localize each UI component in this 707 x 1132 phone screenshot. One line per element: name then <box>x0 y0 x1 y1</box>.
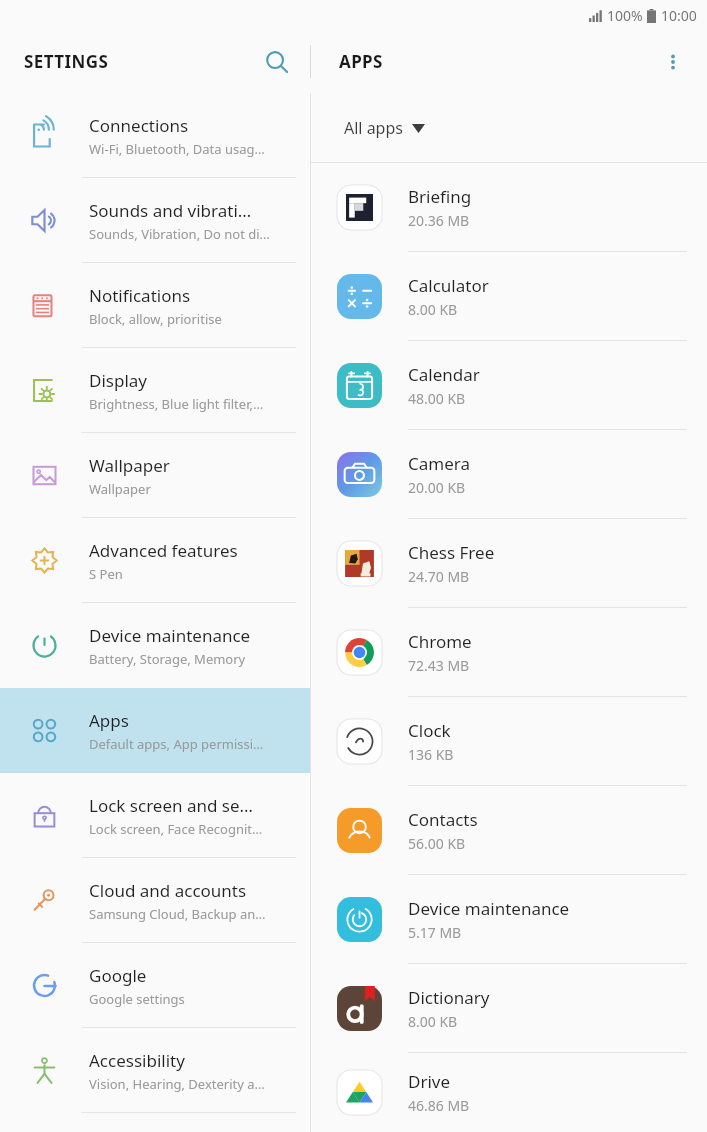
button[interactable]: Sounds and vibrati… <box>0 178 310 263</box>
staticText: Calculator <box>408 274 489 297</box>
staticText: Default apps, App permissi… <box>89 735 264 753</box>
staticText: 48.00 KB <box>408 389 466 408</box>
button[interactable]: Accessibility <box>0 1028 310 1113</box>
staticText: S Pen <box>89 565 123 583</box>
staticText: Chess Free <box>408 541 495 564</box>
button[interactable]: Dictionary <box>311 964 707 1053</box>
button[interactable]: Calculator <box>311 252 707 341</box>
staticText: 72.43 MB <box>408 656 470 675</box>
button[interactable]: Google <box>0 943 310 1028</box>
button[interactable]: Display <box>0 348 310 433</box>
button[interactable]: More options <box>647 36 699 88</box>
button[interactable]: Apps <box>0 688 310 773</box>
staticText: Device maintenance <box>408 897 570 920</box>
staticText: Drive <box>408 1070 451 1093</box>
button[interactable]: Drive <box>311 1053 707 1132</box>
button[interactable]: Search <box>251 36 303 88</box>
staticText: Wi-Fi, Bluetooth, Data usag… <box>89 140 265 158</box>
staticText: Advanced features <box>89 539 238 562</box>
staticText: 8.00 KB <box>408 300 458 319</box>
staticText: Google <box>89 964 147 987</box>
staticText: Display <box>89 369 147 392</box>
staticText: 24.70 MB <box>408 567 470 586</box>
staticText: 10:00 <box>661 6 697 25</box>
staticText: Camera <box>408 452 470 475</box>
button[interactable]: Camera <box>311 430 707 519</box>
button[interactable]: Wallpaper <box>0 433 310 518</box>
staticText: Block, allow, prioritise <box>89 310 222 328</box>
button[interactable]: Chrome <box>311 608 707 697</box>
button[interactable]: Connections <box>0 93 310 178</box>
staticText: 20.00 KB <box>408 478 466 497</box>
staticText: SETTINGS <box>24 50 251 73</box>
staticText: 46.86 MB <box>408 1096 470 1115</box>
staticText: 5.17 MB <box>408 923 462 942</box>
staticText: All apps <box>344 117 403 139</box>
staticText: Sounds, Vibration, Do not di… <box>89 225 270 243</box>
staticText: Sounds and vibrati… <box>89 199 252 222</box>
button[interactable]: Contacts <box>311 786 707 875</box>
button[interactable]: All apps <box>341 113 428 143</box>
staticText: Brightness, Blue light filter,… <box>89 395 264 413</box>
button[interactable]: Clock <box>311 697 707 786</box>
staticText: Battery, Storage, Memory <box>89 650 246 668</box>
staticText: Contacts <box>408 808 478 831</box>
staticText: APPS <box>339 50 647 73</box>
button[interactable]: Calendar <box>311 341 707 430</box>
staticText: Clock <box>408 719 451 742</box>
staticText: 20.36 MB <box>408 211 470 230</box>
staticText: Vision, Hearing, Dexterity a… <box>89 1075 265 1093</box>
staticText: Chrome <box>408 630 472 653</box>
staticText: 8.00 KB <box>408 1012 458 1031</box>
staticText: Lock screen and se… <box>89 794 254 817</box>
staticText: Lock screen, Face Recognit… <box>89 820 263 838</box>
staticText: Briefing <box>408 185 472 208</box>
staticText: Calendar <box>408 363 480 386</box>
staticText: Dictionary <box>408 986 490 1009</box>
staticText: Accessibility <box>89 1049 185 1072</box>
button[interactable]: Briefing <box>311 163 707 252</box>
staticText: Notifications <box>89 284 191 307</box>
staticText: Device maintenance <box>89 624 251 647</box>
staticText: Apps <box>89 709 129 732</box>
staticText: 56.00 KB <box>408 834 466 853</box>
staticText: Google settings <box>89 990 185 1008</box>
button[interactable]: Advanced features <box>0 518 310 603</box>
staticText: Samsung Cloud, Backup an… <box>89 905 266 923</box>
button[interactable]: Cloud and accounts <box>0 858 310 943</box>
button[interactable]: Notifications <box>0 263 310 348</box>
button[interactable]: Lock screen and se… <box>0 773 310 858</box>
staticText: Connections <box>89 114 189 137</box>
staticText: 136 KB <box>408 745 454 764</box>
staticText: 100% <box>607 6 643 25</box>
staticText: Wallpaper <box>89 480 151 498</box>
button[interactable]: Device maintenance <box>0 603 310 688</box>
button[interactable]: Device maintenance <box>311 875 707 964</box>
staticText: Cloud and accounts <box>89 879 247 902</box>
button[interactable]: Chess Free <box>311 519 707 608</box>
staticText: Wallpaper <box>89 454 170 477</box>
